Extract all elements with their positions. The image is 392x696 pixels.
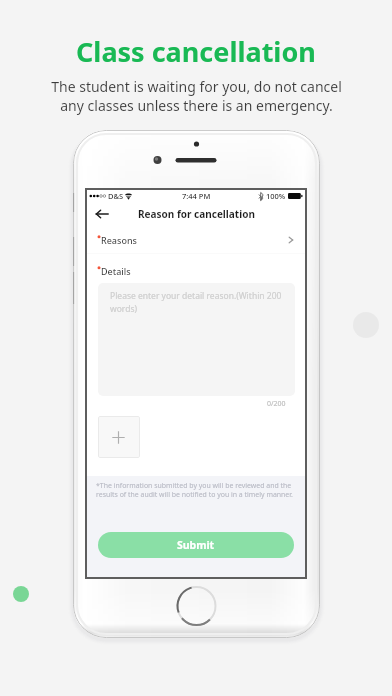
button[interactable]: Reasons <box>85 226 307 253</box>
staticText: Please enter your detail reason.(Within … <box>110 290 287 315</box>
button[interactable]: Add attachment <box>98 416 140 458</box>
staticText: The student is waiting for you, do not c… <box>51 77 342 115</box>
staticText: D&S <box>108 191 124 201</box>
staticText: 7:44 PM <box>182 191 211 201</box>
staticText: *The information submitted by you will b… <box>96 481 301 499</box>
staticText: 100% <box>266 191 286 201</box>
staticText: Details <box>101 265 131 277</box>
button[interactable]: Submit <box>98 532 294 558</box>
staticText: 0/200 <box>267 399 286 409</box>
staticText: Submit <box>177 538 215 552</box>
staticText: Reasons <box>101 234 137 246</box>
staticText: Class cancellation <box>76 33 316 70</box>
staticText: Reason for cancellation <box>138 207 255 221</box>
button[interactable]: Back <box>95 206 111 222</box>
button[interactable]: Please enter your detail reason.(Within … <box>98 283 295 396</box>
